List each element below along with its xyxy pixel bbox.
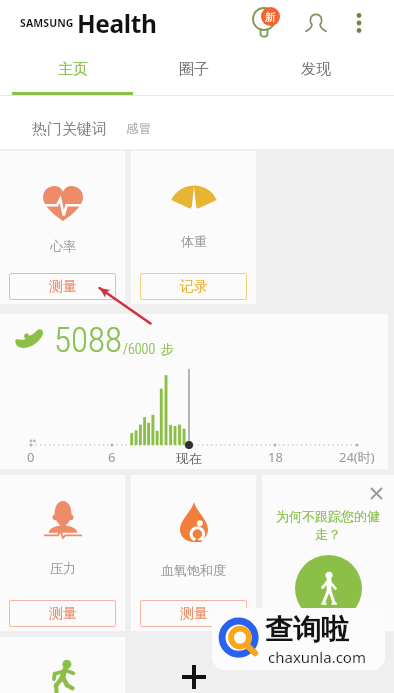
staticText: 测量 — [49, 278, 77, 296]
staticText: 测量 — [49, 605, 77, 623]
button[interactable]: 感冒 — [126, 121, 151, 137]
button[interactable] — [0, 637, 125, 693]
staticText: 2 — [194, 527, 203, 546]
button[interactable]: 5088 — [0, 314, 388, 469]
button[interactable]: 测量 — [140, 600, 247, 627]
staticText: 新 — [265, 10, 276, 24]
staticText: 记录 — [180, 278, 208, 296]
button[interactable]: 主页 — [12, 46, 133, 95]
staticText: 现在 — [176, 450, 202, 466]
button[interactable]: 压力 — [0, 475, 125, 631]
button[interactable]: 圈子 — [133, 46, 255, 95]
staticText: 圈子 — [179, 60, 209, 79]
button[interactable]: 热门关键词 — [32, 120, 107, 139]
staticText: chaxunla.com — [268, 647, 366, 667]
button[interactable]: 体重 — [131, 151, 256, 304]
button[interactable] — [131, 637, 256, 693]
button[interactable]: 心率 — [0, 151, 125, 304]
button[interactable]: Profile — [293, 0, 339, 46]
staticText: SAMSUNG — [20, 16, 74, 30]
button[interactable]: Close — [262, 475, 394, 631]
button[interactable]: Tips — [242, 0, 288, 46]
staticText: 心率 — [50, 238, 76, 254]
staticText: 查询啦 — [265, 612, 349, 647]
staticText: 步 — [161, 341, 174, 357]
button[interactable]: More options — [337, 1, 381, 45]
button[interactable]: 2 — [131, 475, 256, 631]
staticText: 测量 — [180, 605, 208, 623]
staticText: 为何不跟踪您的健走？ — [272, 508, 384, 543]
staticText: 体重 — [181, 233, 207, 249]
staticText: /6000 — [123, 341, 156, 357]
staticText: 发现 — [301, 60, 331, 79]
button[interactable]: 发现 — [255, 46, 377, 95]
staticText: Health — [77, 7, 157, 40]
staticText: 主页 — [58, 60, 88, 79]
staticText: 24(时) — [339, 448, 375, 466]
staticText: 血氧饱和度 — [161, 562, 226, 578]
button[interactable]: 测量 — [9, 273, 116, 300]
staticText: 6 — [108, 448, 116, 466]
staticText: 18 — [268, 448, 283, 466]
staticText: 0 — [27, 448, 35, 466]
button[interactable]: Close — [358, 475, 394, 511]
staticText: 5088 — [54, 320, 123, 361]
staticText: 压力 — [50, 560, 76, 576]
button[interactable]: 测量 — [9, 600, 116, 627]
button[interactable]: 记录 — [140, 273, 247, 300]
